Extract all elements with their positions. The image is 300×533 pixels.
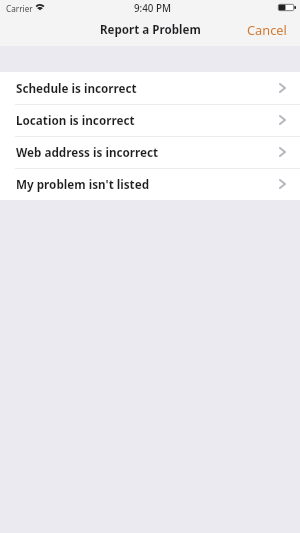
other: Open My problem isn't listed — [279, 179, 286, 189]
staticText: Schedule is incorrect — [16, 80, 137, 96]
staticText: Cancel — [247, 21, 287, 38]
staticText: My problem isn't listed — [16, 176, 150, 192]
staticText: 9:40 PM — [134, 2, 171, 15]
other: Open Schedule is incorrect — [279, 83, 286, 93]
button[interactable]: My problem isn't listed — [0, 168, 300, 200]
button[interactable]: Location is incorrect — [0, 104, 300, 136]
staticText: Report a Problem — [100, 22, 201, 38]
staticText: Location is incorrect — [16, 112, 135, 128]
button[interactable]: Cancel — [235, 15, 300, 46]
staticText: Web address is incorrect — [16, 144, 159, 160]
other: Open Location is incorrect — [279, 115, 286, 125]
other: Open Web address is incorrect — [279, 147, 286, 157]
staticText: Carrier — [6, 3, 33, 14]
button[interactable]: Web address is incorrect — [0, 136, 300, 168]
button[interactable]: Schedule is incorrect — [0, 72, 300, 104]
